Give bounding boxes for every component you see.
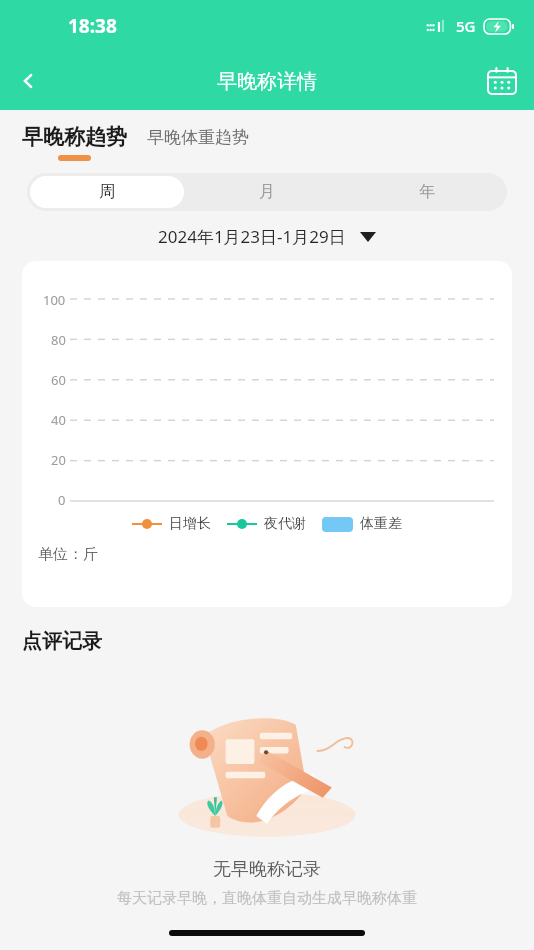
staticText: 0 xyxy=(58,491,66,509)
staticText: 月 xyxy=(259,182,275,202)
button[interactable]: 年 xyxy=(350,176,504,208)
staticText: 周 xyxy=(99,182,115,202)
button[interactable]: 早晚体重趋势 xyxy=(147,127,249,148)
staticText: 每天记录早晚，直晚体重自动生成早晚称体重 xyxy=(0,889,534,908)
staticText: 早晚称趋势 xyxy=(22,124,127,150)
button[interactable]: 早晚称趋势 xyxy=(22,124,127,161)
staticText: 2024年1月23日-1月29日 xyxy=(158,225,346,248)
staticText: 40 xyxy=(51,411,66,429)
button[interactable]: 月 xyxy=(190,176,344,208)
staticText: 夜代谢 xyxy=(264,515,306,533)
staticText: 80 xyxy=(51,331,66,349)
button[interactable]: 周 xyxy=(30,176,184,208)
staticText: 年 xyxy=(419,182,435,202)
staticText: 体重差 xyxy=(360,515,402,533)
button[interactable]: Calendar xyxy=(480,59,524,103)
staticText: 无早晚称记录 xyxy=(0,858,534,881)
staticText: 日增长 xyxy=(169,515,211,533)
staticText: 点评记录 xyxy=(22,629,102,654)
staticText: 20 xyxy=(51,451,66,469)
staticText: 单位：斤 xyxy=(38,545,98,564)
staticText: 18:38 xyxy=(68,13,117,39)
staticText: 100 xyxy=(43,291,66,309)
staticText: 早晚称详情 xyxy=(217,69,317,94)
staticText: 5G xyxy=(456,16,476,36)
button[interactable]: 2024年1月23日-1月29日 xyxy=(0,225,534,248)
staticText: 60 xyxy=(51,371,66,389)
button[interactable]: Back xyxy=(6,59,50,103)
